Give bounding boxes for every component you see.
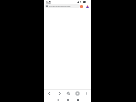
staticText: 4chan.org/index.php xyxy=(49,5,71,8)
button[interactable]: Back xyxy=(44,89,54,97)
button[interactable]: Search xyxy=(64,89,73,97)
button[interactable]: Back xyxy=(53,97,63,102)
button[interactable]: Menu xyxy=(82,89,91,97)
staticText: 9:41 xyxy=(46,1,52,5)
button[interactable]: Tabs xyxy=(73,89,82,97)
button[interactable]: Home xyxy=(63,97,73,102)
button[interactable]: 4chan.org/index.php xyxy=(45,4,80,8)
button[interactable]: Recents xyxy=(73,97,83,102)
button[interactable]: Forward xyxy=(54,89,64,97)
button[interactable]: Profile xyxy=(79,4,83,8)
button[interactable]: Assistant xyxy=(85,4,89,8)
